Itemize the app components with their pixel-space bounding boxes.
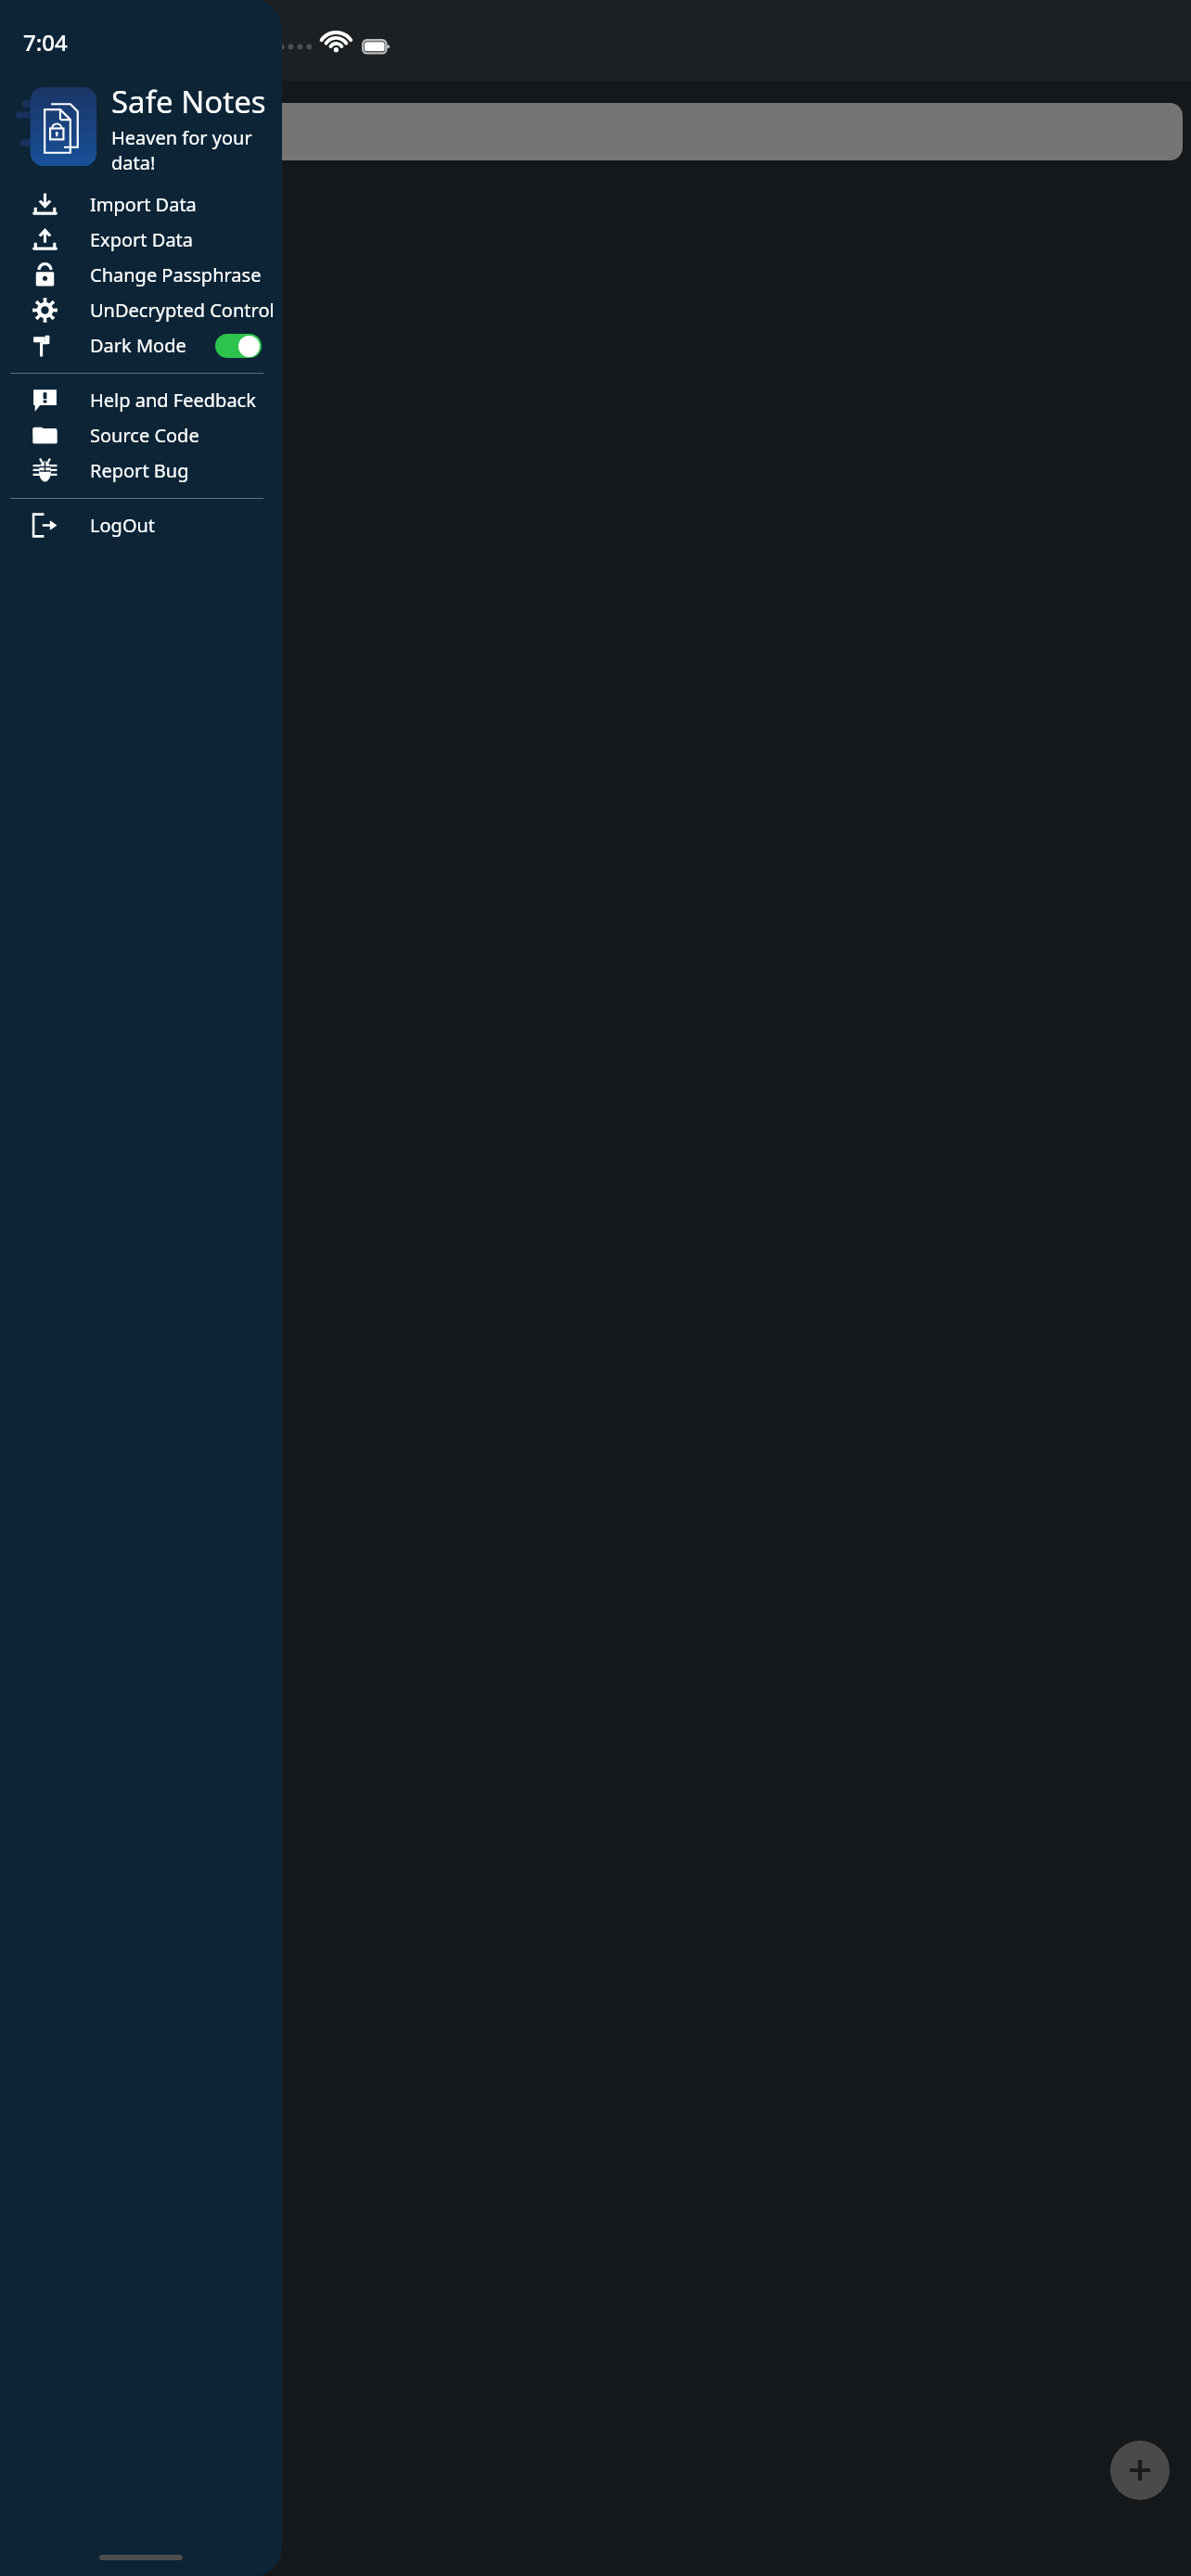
staticText: Import Data <box>90 192 197 217</box>
staticText: Export Data <box>90 227 194 252</box>
button[interactable]: UnDecrypted Control <box>0 293 282 327</box>
staticText: Safe Notes <box>111 81 266 122</box>
button[interactable]: Help and Feedback <box>0 383 282 417</box>
staticText: Source Code <box>90 423 199 448</box>
staticText: Change Passphrase <box>90 262 262 287</box>
staticText: 7:04 <box>23 27 68 57</box>
button[interactable]: Report Bug <box>0 453 282 488</box>
button[interactable]: Add note <box>1110 2441 1170 2500</box>
button[interactable]: Change Passphrase <box>0 258 282 292</box>
staticText: Help and Feedback <box>90 388 256 413</box>
button[interactable]: Source Code <box>0 418 282 453</box>
staticText: Heaven for your data! <box>111 125 282 172</box>
button[interactable]: Dark Mode <box>0 328 282 363</box>
staticText: Dark Mode <box>90 333 186 358</box>
staticText: UnDecrypted Control <box>90 298 275 323</box>
button[interactable]: Export Data <box>0 223 282 257</box>
button[interactable]: LogOut <box>0 508 282 542</box>
button[interactable] <box>215 334 262 358</box>
button[interactable]: Import Data <box>0 187 282 222</box>
button[interactable] <box>93 103 1183 160</box>
staticText: LogOut <box>90 513 156 538</box>
staticText: Report Bug <box>90 458 189 483</box>
